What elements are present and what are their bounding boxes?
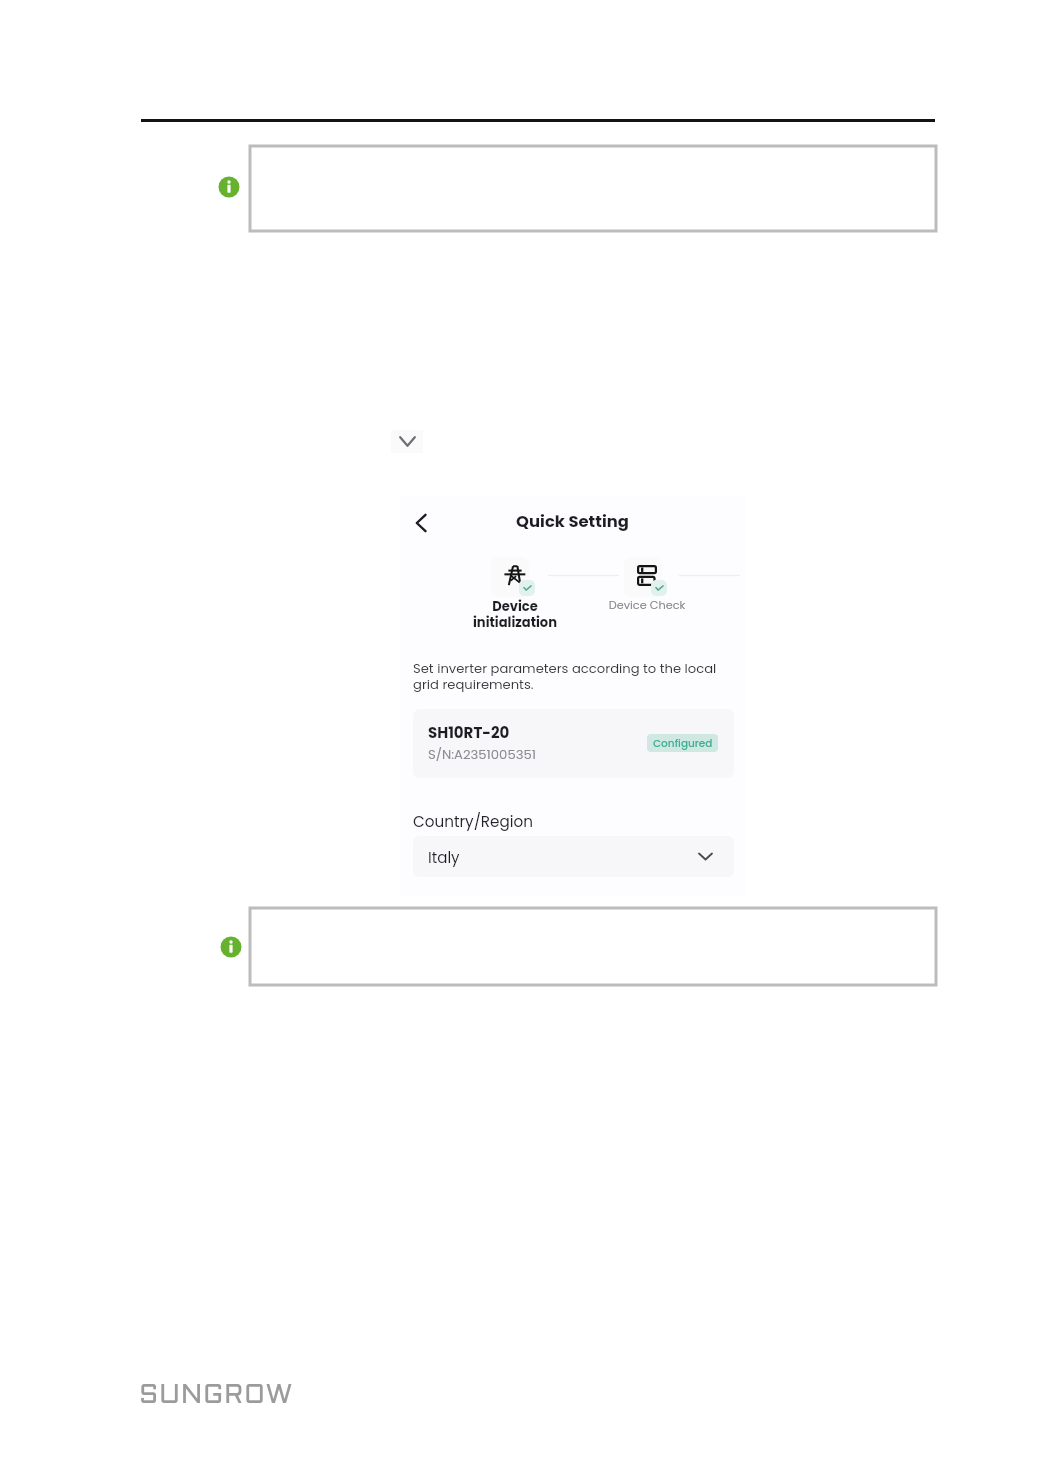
staticText: Device initialization [455,597,575,631]
button[interactable]: SH10RT-20 [413,709,734,778]
button[interactable]: Device initialization [455,557,575,632]
staticText: Configured [653,736,713,751]
staticText: Country/Region [413,811,533,832]
staticText: SUNGROW [139,1384,293,1409]
button[interactable]: Back [406,505,436,535]
staticText: S/N:A2351005351 [428,745,536,763]
staticText: SH10RT-20 [428,722,510,743]
staticText: Italy [428,847,460,868]
button[interactable]: Italy [413,836,734,877]
staticText: Set inverter parameters according to the… [413,659,721,694]
staticText: Quick Setting [416,510,729,533]
staticText: Device Check [587,597,707,613]
button[interactable]: Device Check [587,557,707,632]
